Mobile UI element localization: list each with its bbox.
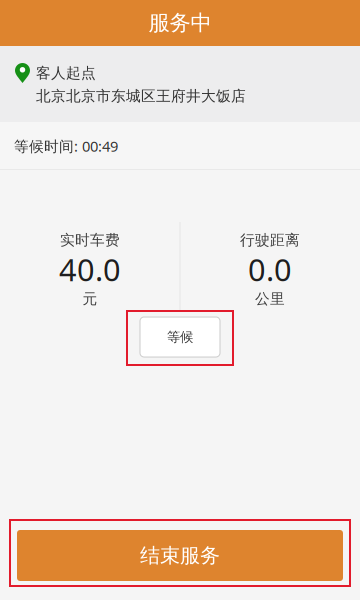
staticText: 服务中 bbox=[148, 10, 211, 36]
staticText: 公里 bbox=[255, 290, 285, 308]
staticText: 等候 bbox=[167, 329, 193, 345]
button[interactable]: 结束服务 bbox=[17, 530, 343, 581]
staticText: 结束服务 bbox=[140, 543, 220, 568]
staticText: 客人起点 bbox=[36, 64, 96, 82]
staticText: 等候时间: 00:49 bbox=[14, 136, 118, 156]
staticText: 40.0 bbox=[59, 249, 121, 290]
staticText: 0.0 bbox=[248, 249, 292, 290]
staticText: 实时车费 bbox=[60, 231, 120, 249]
staticText: 北京北京市东城区王府井大饭店 bbox=[36, 87, 246, 105]
button[interactable]: 等候 bbox=[140, 317, 220, 357]
staticText: 元 bbox=[82, 290, 97, 308]
staticText: 行驶距离 bbox=[240, 231, 300, 249]
